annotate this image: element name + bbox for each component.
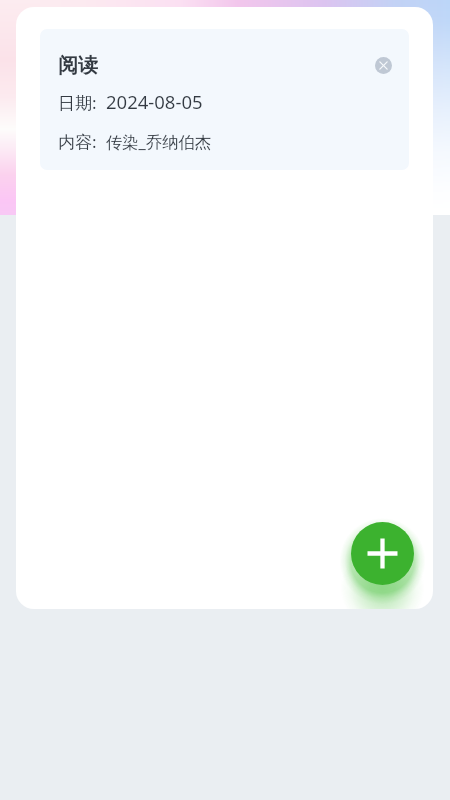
staticText: 传染_乔纳伯杰 (106, 131, 212, 153)
staticText: 2024-08-05 (106, 89, 203, 114)
staticText: 内容: (58, 130, 97, 153)
button[interactable]: Close (375, 57, 392, 74)
staticText: 阅读 (58, 53, 98, 78)
staticText: 日期: (58, 91, 97, 114)
button[interactable]: Add (351, 522, 414, 585)
